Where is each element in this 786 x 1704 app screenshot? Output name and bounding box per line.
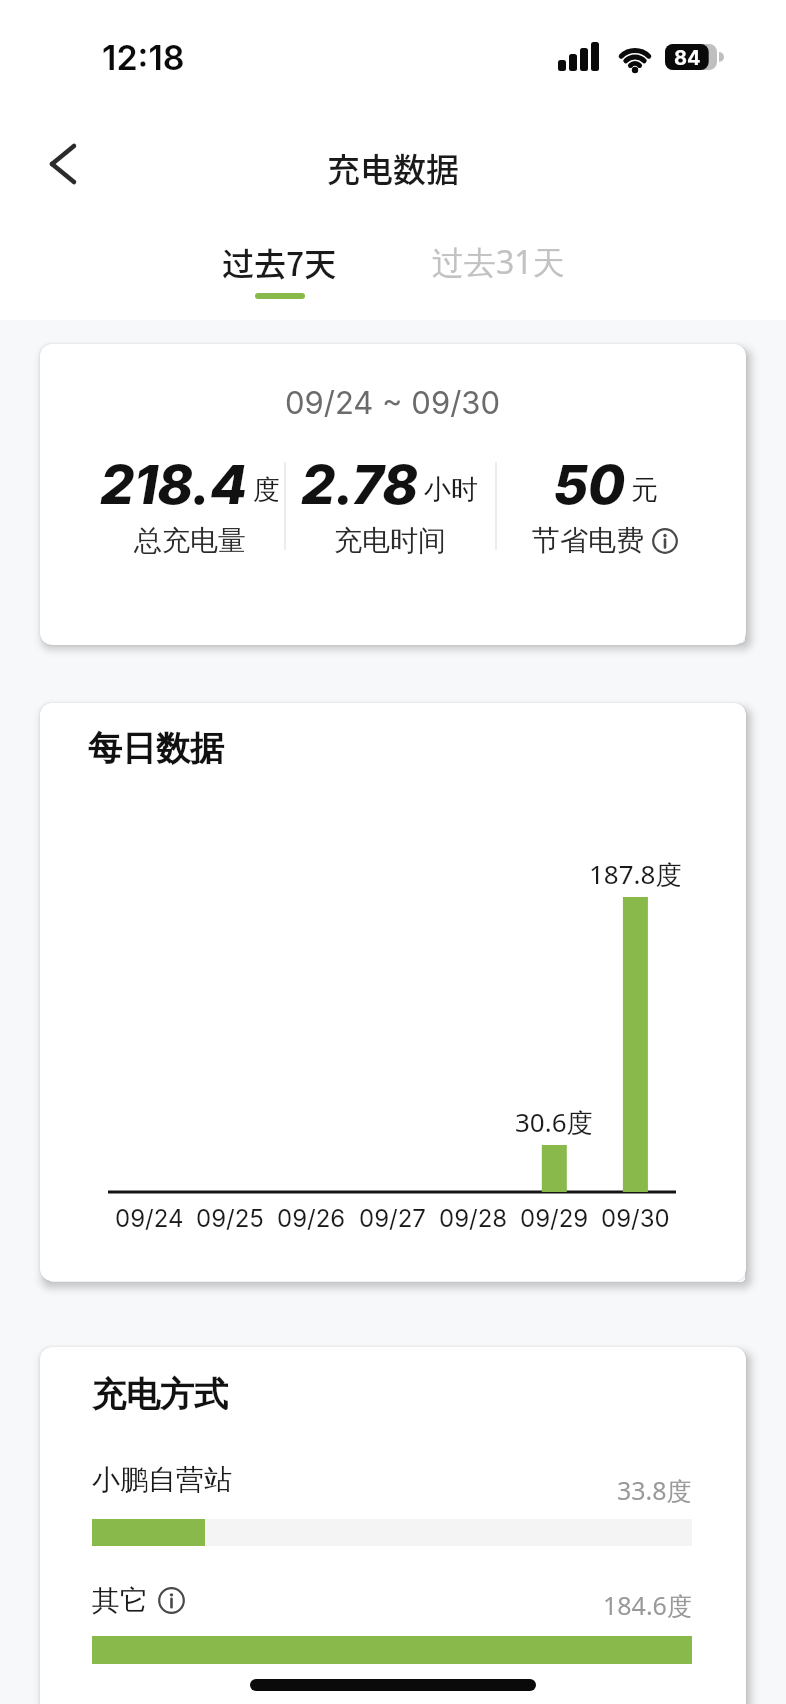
button[interactable]: 过去7天 [199,232,359,292]
staticText: 每日数据 [88,727,224,770]
staticText: 187.8度 [589,856,682,892]
staticText: 33.8度 [617,1473,692,1507]
staticText: 09/29 [520,1204,589,1233]
staticText: 节省电费 [532,523,644,558]
staticText: 09/25 [196,1204,264,1233]
staticText: 09/30 [601,1204,670,1233]
staticText: 小时 [424,473,478,507]
staticText: 09/28 [439,1204,508,1233]
staticText: 2.78 [301,452,418,517]
staticText: 09/24 [115,1204,184,1233]
button[interactable] [158,1587,185,1614]
staticText: 小鹏自营站 [92,1462,232,1497]
staticText: 218.4 [100,452,247,517]
staticText: 其它 [92,1583,148,1618]
button[interactable] [652,528,678,554]
staticText: 09/27 [359,1204,426,1233]
staticText: 09/24 ~ 09/30 [285,384,501,422]
staticText: 30.6度 [515,1104,593,1140]
staticText: 84 [674,46,701,70]
staticText: 充电方式 [92,1373,228,1416]
staticText: 充电时间 [334,523,446,558]
staticText: 50 [553,452,625,517]
staticText: 09/26 [277,1204,346,1233]
staticText: 过去31天 [432,240,565,284]
staticText: 充电数据 [327,144,459,192]
staticText: 12:18 [102,37,185,78]
staticText: 过去7天 [222,239,337,285]
staticText: 元 [631,473,658,507]
staticText: 度 [253,473,280,507]
button[interactable] [36,136,88,188]
button[interactable]: 过去31天 [418,232,578,292]
staticText: 总充电量 [134,523,246,558]
staticText: 184.6度 [603,1588,692,1622]
